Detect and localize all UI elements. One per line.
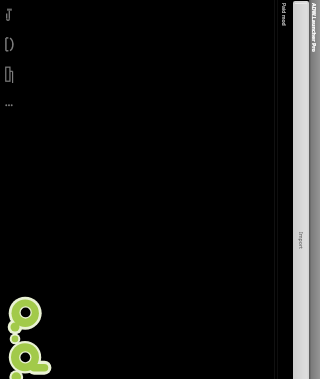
staticText: Import bbox=[298, 232, 305, 249]
staticText: ADW.Launcher Pro bbox=[311, 3, 318, 52]
staticText: Paid mod bbox=[280, 3, 287, 26]
button[interactable]: Import bbox=[293, 1, 309, 379]
button[interactable]: Upload bbox=[4, 6, 15, 24]
button[interactable]: More options bbox=[3, 98, 16, 112]
button[interactable]: Theme bbox=[4, 35, 15, 53]
button[interactable]: Copy bbox=[4, 65, 15, 83]
